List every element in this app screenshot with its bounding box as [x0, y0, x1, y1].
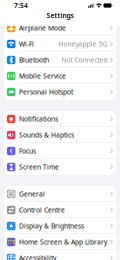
staticText: General: [19, 190, 45, 198]
staticText: Settings: [46, 11, 73, 20]
button[interactable]: Focus: [4, 143, 116, 159]
staticText: Bluetooth: [19, 56, 49, 64]
button[interactable]: Display & Brightness: [4, 218, 116, 234]
staticText: Wi-Fi: [19, 40, 34, 48]
button[interactable]: Sounds & Haptics: [4, 127, 116, 143]
staticText: Airplane Mode: [19, 24, 66, 32]
button[interactable]: Mobile Service: [4, 68, 116, 84]
button[interactable]: Airplane Mode: [4, 20, 116, 36]
staticText: Mobile Service: [19, 72, 66, 80]
staticText: Not Connected: [62, 56, 108, 64]
staticText: 7:54: [14, 1, 28, 10]
staticText: Personal Hotspot: [19, 88, 73, 96]
staticText: Notifications: [19, 115, 58, 123]
button[interactable]: Personal Hotspot: [4, 84, 116, 100]
button[interactable]: Control Centre: [4, 202, 116, 218]
staticText: Focus: [19, 147, 36, 155]
button[interactable]: Home Screen & App Library: [4, 234, 116, 250]
staticText: Home Screen & App Library: [19, 238, 107, 246]
staticText: Display & Brightness: [19, 222, 84, 230]
button[interactable]: Bluetooth: [4, 52, 116, 68]
staticText: Sounds & Haptics: [19, 131, 74, 139]
staticText: Accessibility: [19, 254, 56, 260]
staticText: Screen Time: [19, 163, 59, 171]
button[interactable]: Screen Time: [4, 159, 116, 175]
button[interactable]: General: [4, 186, 116, 202]
button[interactable]: Notifications: [4, 111, 116, 127]
button[interactable]: Wi-Fi: [4, 36, 116, 52]
staticText: Honeyapple 5G: [59, 40, 108, 48]
staticText: Control Centre: [19, 206, 65, 214]
button[interactable]: Accessibility: [4, 250, 116, 260]
